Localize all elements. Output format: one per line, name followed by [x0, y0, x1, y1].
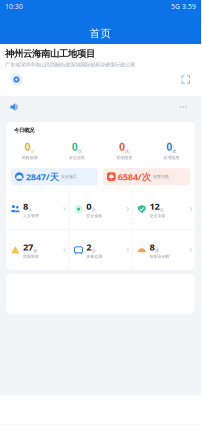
button[interactable]: 12 [132, 189, 195, 229]
staticText: 0 [72, 140, 78, 154]
button[interactable]: 2 [69, 230, 132, 270]
staticText: 报警次数 [153, 174, 169, 179]
staticText: 安全巡检 [86, 213, 102, 218]
staticText: 次 [31, 149, 35, 154]
staticText: 次 [125, 149, 129, 154]
button[interactable]: 27 [6, 230, 68, 270]
staticText: 设备监测 [86, 254, 102, 259]
staticText: 风险预测 [22, 155, 38, 160]
staticText: 台 [92, 248, 96, 253]
staticText: 次 [173, 149, 177, 154]
staticText: 人员管理 [23, 213, 39, 218]
staticText: 安全施工 [61, 174, 77, 179]
button[interactable]: 0 [69, 189, 132, 229]
staticText: 神州云海南山工地项目 [5, 48, 95, 59]
staticText: 6584/次 [118, 170, 151, 183]
staticText: 危险隐患 [23, 254, 39, 259]
button[interactable]: 全屏地图 [182, 75, 190, 84]
button[interactable]: 6584/次 [103, 168, 190, 185]
button[interactable] [151, 427, 201, 433]
staticText: 8 [150, 241, 155, 253]
staticText: 今日概况 [14, 127, 34, 134]
staticText: 10:30 [5, 2, 23, 11]
staticText: 0 [119, 140, 125, 154]
staticText: 顶 [155, 248, 159, 253]
button[interactable]: 8 [132, 230, 195, 270]
staticText: 次 [160, 207, 164, 212]
staticText: 发现隐患 [116, 155, 132, 160]
staticText: 0 [166, 140, 172, 154]
staticText: 次 [78, 149, 82, 154]
staticText: 安全巡检 [69, 155, 85, 160]
staticText: 广东省深圳市南山区西丽街道深圳国际创新谷硬蛋行政公寓 [5, 61, 135, 68]
staticText: 人 [28, 207, 32, 212]
staticText: 0 [24, 140, 30, 154]
staticText: 8 [23, 200, 28, 212]
staticText: 12 [150, 200, 160, 212]
staticText: 处 [33, 248, 37, 253]
staticText: 处理隐患 [163, 155, 179, 160]
staticText: 智能安全帽 [150, 254, 170, 259]
staticText: 27 [23, 241, 33, 253]
button[interactable]: 公告 [0, 96, 201, 118]
staticText: 安全决策 [150, 213, 166, 218]
staticText: 2847/天 [26, 170, 59, 183]
button[interactable]: 2847/天 [11, 168, 98, 185]
button[interactable]: 8 [6, 189, 68, 229]
staticText: 首页 [89, 27, 111, 40]
staticText: 2 [86, 241, 91, 253]
staticText: 次 [92, 207, 96, 212]
staticText: 0 [86, 200, 91, 212]
staticText: 5G 3.59 [171, 2, 196, 11]
